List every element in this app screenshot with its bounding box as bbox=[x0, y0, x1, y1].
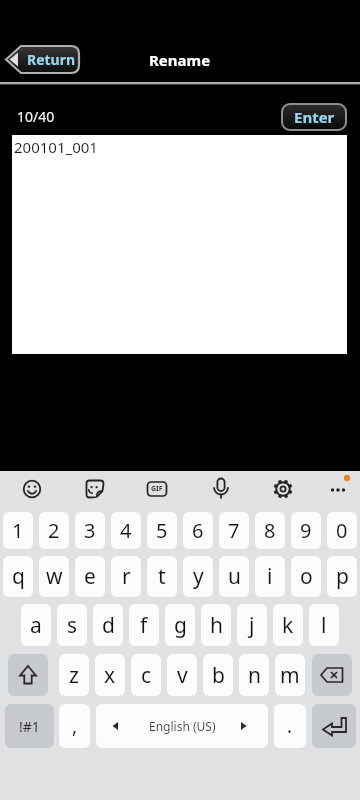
button[interactable]: , bbox=[59, 704, 90, 748]
button[interactable]: Enter bbox=[281, 103, 347, 131]
staticText: a bbox=[30, 611, 42, 640]
button[interactable]: f bbox=[129, 604, 159, 646]
button[interactable] bbox=[323, 474, 353, 504]
button[interactable]: 2 bbox=[39, 512, 69, 549]
staticText: h bbox=[210, 611, 223, 640]
button[interactable]: q bbox=[3, 556, 33, 597]
staticText: d bbox=[102, 611, 115, 640]
button[interactable] bbox=[142, 474, 172, 504]
button[interactable]: Return bbox=[5, 44, 81, 75]
staticText: 5 bbox=[156, 517, 168, 544]
staticText: , bbox=[72, 713, 78, 739]
button[interactable]: n bbox=[239, 654, 269, 696]
staticText: e bbox=[84, 562, 96, 591]
button[interactable]: c bbox=[131, 654, 161, 696]
staticText: 9 bbox=[300, 517, 312, 544]
staticText: b bbox=[212, 661, 225, 690]
button[interactable]: 0 bbox=[327, 512, 357, 549]
staticText: m bbox=[280, 661, 300, 690]
button[interactable]: 200101_001 bbox=[12, 135, 347, 354]
button[interactable]: v bbox=[167, 654, 197, 696]
staticText: v bbox=[177, 661, 188, 690]
button[interactable]: t bbox=[147, 556, 177, 597]
staticText: 4 bbox=[120, 517, 132, 544]
button[interactable]: r bbox=[111, 556, 141, 597]
button[interactable]: 6 bbox=[183, 512, 213, 549]
button[interactable]: w bbox=[39, 556, 69, 597]
staticText: 3 bbox=[84, 517, 96, 544]
staticText: Enter bbox=[294, 107, 335, 127]
button[interactable]: . bbox=[274, 704, 306, 748]
button[interactable]: u bbox=[219, 556, 249, 597]
button[interactable]: !#1 bbox=[5, 704, 54, 748]
staticText: l bbox=[321, 611, 327, 640]
button[interactable]: x bbox=[95, 654, 125, 696]
button[interactable]: English (US) bbox=[96, 704, 268, 748]
button[interactable] bbox=[312, 654, 352, 696]
button[interactable]: d bbox=[93, 604, 123, 646]
button[interactable]: 8 bbox=[255, 512, 285, 549]
button[interactable] bbox=[17, 474, 47, 504]
button[interactable]: h bbox=[201, 604, 231, 646]
staticText: i bbox=[267, 562, 273, 591]
staticText: n bbox=[248, 661, 261, 690]
button[interactable]: 4 bbox=[111, 512, 141, 549]
staticText: k bbox=[282, 611, 294, 640]
button[interactable]: l bbox=[309, 604, 339, 646]
button[interactable]: i bbox=[255, 556, 285, 597]
button[interactable]: 1 bbox=[3, 512, 33, 549]
button[interactable]: b bbox=[203, 654, 233, 696]
staticText: q bbox=[12, 562, 25, 591]
staticText: GIF bbox=[151, 484, 163, 494]
staticText: x bbox=[104, 661, 116, 690]
button[interactable] bbox=[80, 474, 110, 504]
button[interactable]: e bbox=[75, 556, 105, 597]
staticText: 0 bbox=[336, 517, 348, 544]
staticText: 200101_001 bbox=[14, 137, 98, 157]
staticText: y bbox=[193, 562, 204, 591]
staticText: English (US) bbox=[149, 718, 216, 734]
staticText: 6 bbox=[192, 517, 204, 544]
staticText: c bbox=[141, 661, 152, 690]
button[interactable]: o bbox=[291, 556, 321, 597]
staticText: g bbox=[174, 611, 187, 640]
staticText: t bbox=[158, 562, 166, 591]
button[interactable]: 9 bbox=[291, 512, 321, 549]
button[interactable]: s bbox=[57, 604, 87, 646]
staticText: z bbox=[69, 661, 79, 690]
button[interactable]: k bbox=[273, 604, 303, 646]
button[interactable]: m bbox=[275, 654, 305, 696]
button[interactable]: z bbox=[59, 654, 89, 696]
button[interactable]: 3 bbox=[75, 512, 105, 549]
staticText: 1 bbox=[12, 517, 24, 544]
staticText: 10/40 bbox=[17, 107, 55, 126]
staticText: 2 bbox=[48, 517, 60, 544]
button[interactable]: 7 bbox=[219, 512, 249, 549]
button[interactable] bbox=[268, 474, 298, 504]
staticText: Return bbox=[27, 50, 76, 69]
staticText: . bbox=[287, 713, 293, 739]
staticText: Rename bbox=[149, 50, 211, 70]
staticText: u bbox=[228, 562, 241, 591]
staticText: !#1 bbox=[19, 717, 40, 736]
button[interactable]: 5 bbox=[147, 512, 177, 549]
button[interactable]: p bbox=[327, 556, 357, 597]
button[interactable]: y bbox=[183, 556, 213, 597]
button[interactable]: a bbox=[21, 604, 51, 646]
staticText: w bbox=[46, 562, 63, 591]
staticText: f bbox=[140, 611, 148, 640]
staticText: r bbox=[122, 562, 131, 591]
button[interactable]: g bbox=[165, 604, 195, 646]
button[interactable] bbox=[8, 654, 48, 696]
button[interactable]: j bbox=[237, 604, 267, 646]
staticText: 8 bbox=[264, 517, 276, 544]
staticText: p bbox=[336, 562, 349, 591]
staticText: o bbox=[300, 562, 313, 591]
staticText: 7 bbox=[228, 517, 240, 544]
button[interactable] bbox=[312, 704, 356, 748]
staticText: j bbox=[249, 611, 255, 640]
staticText: s bbox=[67, 611, 78, 640]
button[interactable] bbox=[206, 474, 236, 504]
